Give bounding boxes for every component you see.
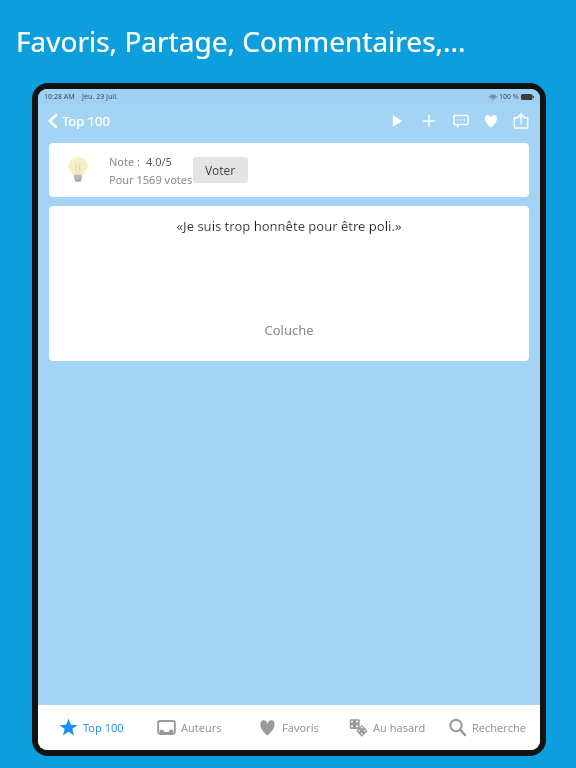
button[interactable]: Top 100 (46, 108, 113, 134)
staticText: Pour 1569 votes (109, 172, 193, 187)
button[interactable]: Note : (49, 143, 529, 197)
staticText: «Je suis trop honnête pour être poli.» (49, 217, 529, 235)
button[interactable]: Add (418, 110, 440, 132)
staticText: 100 % (499, 92, 519, 102)
staticText: Top 100 (62, 112, 110, 130)
button[interactable]: Share (510, 110, 532, 132)
button[interactable]: Recherche (437, 705, 536, 750)
staticText: Au hasard (373, 720, 426, 735)
button[interactable]: Play (386, 110, 408, 132)
button[interactable]: «Je suis trop honnête pour être poli.» (49, 206, 529, 361)
staticText: Coluche (49, 321, 529, 339)
button[interactable]: Voter (193, 157, 248, 183)
button[interactable]: Auteurs (140, 705, 239, 750)
button[interactable]: Favorite (480, 110, 502, 132)
button[interactable]: Top 100 (42, 705, 140, 750)
button[interactable]: Favoris (239, 705, 338, 750)
staticText: Favoris, Partage, Commentaires,... (16, 22, 572, 60)
button[interactable]: Au hasard (338, 705, 437, 750)
staticText: Auteurs (181, 720, 222, 735)
staticText: Voter (205, 162, 236, 178)
staticText: 4.0/5 (146, 154, 172, 169)
staticText: Favoris (282, 720, 319, 735)
staticText: Recherche (472, 720, 526, 735)
button[interactable]: Comments (450, 110, 472, 132)
staticText: Top 100 (83, 720, 124, 735)
staticText: Jeu. 23 juil. (82, 92, 118, 102)
staticText: Note : (109, 154, 140, 169)
staticText: 10:28 AM (44, 92, 75, 102)
